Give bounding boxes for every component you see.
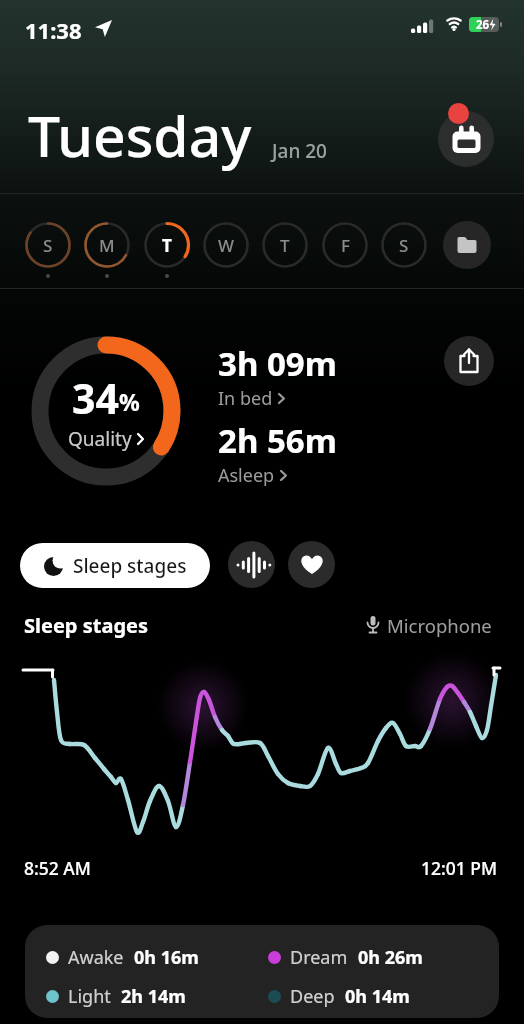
button[interactable]: 34 [21,326,191,496]
button[interactable]: S [25,222,71,268]
staticText: Quality [68,426,132,452]
button[interactable]: M [84,222,130,268]
staticText: Asleep [218,463,275,488]
button[interactable]: 2h 56m [218,418,337,488]
staticText: 0h 14m [345,984,410,1009]
staticText: 0h 16m [134,945,199,970]
staticText: S [43,234,53,257]
staticText: Deep [290,984,335,1009]
staticText: Awake [68,945,124,970]
button[interactable] [288,541,335,588]
button[interactable]: W [203,222,249,268]
staticText: Light [68,984,111,1009]
button[interactable]: F [322,222,368,268]
staticText: 11:38 [25,15,82,45]
staticText: 2h 56m [218,418,337,463]
staticText: F [341,234,350,257]
button[interactable]: Dream [268,943,423,971]
button[interactable] [438,111,494,167]
staticText: % [119,386,140,417]
staticText: T [162,234,172,257]
button[interactable]: 3h 09m [218,341,337,411]
staticText: Tuesday [28,96,252,174]
staticText: 12:01 PM [421,856,498,880]
staticText: 3h 09m [218,341,337,386]
staticText: Sleep stages [73,553,187,579]
staticText: 26 [476,17,490,32]
staticText: W [218,234,234,257]
staticText: 34 [72,370,119,426]
staticText: Jan 20 [272,138,327,164]
staticText: Sleep stages [24,612,149,639]
staticText: In bed [218,386,273,411]
staticText: 8:52 AM [24,856,91,880]
staticText: Dream [290,945,348,970]
button[interactable]: Deep [268,982,410,1010]
staticText: 0h 26m [358,945,423,970]
button[interactable]: T [262,222,308,268]
staticText: Microphone [387,613,492,638]
button[interactable]: Awake [25,943,268,971]
staticText: M [99,234,115,257]
button[interactable] [443,221,491,269]
button[interactable]: S [381,222,427,268]
button[interactable]: T [144,222,190,268]
staticText: T [280,234,290,257]
button[interactable]: Light [25,982,268,1010]
button[interactable] [228,541,275,588]
staticText: S [399,234,409,257]
staticText: 2h 14m [121,984,186,1009]
button[interactable] [444,336,494,386]
button[interactable]: Sleep stages [20,543,210,588]
